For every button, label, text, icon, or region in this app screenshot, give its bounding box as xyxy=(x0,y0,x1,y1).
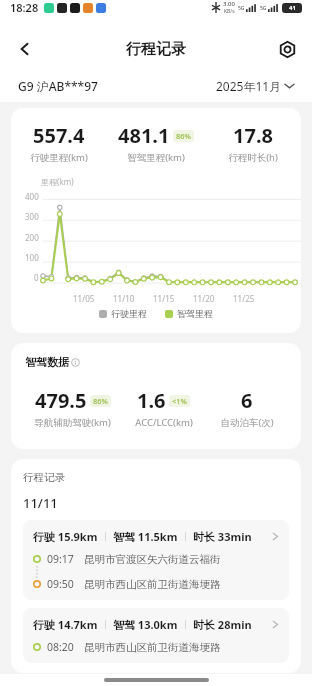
staticText: 时长 28min xyxy=(193,617,252,632)
staticText: 6 xyxy=(241,387,253,414)
staticText: 昆明市西山区前卫街道海埂路 xyxy=(84,641,221,654)
staticText: <1% xyxy=(172,396,187,406)
staticText: 481.1 xyxy=(118,122,170,149)
staticText: 导航辅助驾驶(km) xyxy=(34,416,111,429)
staticText: KB/s xyxy=(224,8,235,15)
staticText: 100 xyxy=(25,252,39,263)
staticText: 479.5 xyxy=(35,387,87,414)
staticText: 41 xyxy=(289,4,296,12)
button[interactable]: 行驶里程 xyxy=(99,308,147,319)
staticText: 557.4 xyxy=(33,122,85,149)
staticText: 2025年11月 xyxy=(216,78,282,94)
staticText: 行程记录 xyxy=(23,471,65,484)
staticText: 400 xyxy=(25,191,39,202)
button[interactable]: 智驾里程 xyxy=(165,308,213,319)
staticText: 智驾里程(km) xyxy=(127,151,185,164)
staticText: 智驾里程 xyxy=(177,308,213,319)
staticText: 行驶里程 xyxy=(111,308,147,319)
staticText: 09:50 xyxy=(47,577,74,591)
staticText: 11/15 xyxy=(153,293,175,304)
staticText: 1.6 xyxy=(137,387,166,414)
staticText: 里程(km) xyxy=(41,176,74,187)
button[interactable]: 行驶 15.9km xyxy=(23,520,289,600)
staticText: 11/20 xyxy=(193,293,215,304)
staticText: 11/25 xyxy=(233,293,255,304)
staticText: 3.00 xyxy=(223,0,235,8)
staticText: 5G xyxy=(238,5,245,12)
button[interactable]: 2025年11月 xyxy=(216,78,294,94)
staticText: 11/11 xyxy=(23,494,58,512)
staticText: 行驶 14.7km xyxy=(33,617,98,632)
staticText: 行程时长(h) xyxy=(228,151,278,164)
staticText: 智驾 13.0km xyxy=(113,617,178,632)
staticText: 0 xyxy=(34,272,39,283)
button[interactable]: Settings xyxy=(270,32,304,66)
staticText: 09:17 xyxy=(47,552,74,566)
staticText: 行驶里程(km) xyxy=(30,151,88,164)
staticText: 行驶 15.9km xyxy=(33,529,98,544)
staticText: ACC/LCC(km) xyxy=(135,416,193,429)
staticText: 时长 33min xyxy=(193,529,252,544)
staticText: 18:28 xyxy=(10,0,39,15)
button[interactable]: 智驾数据 xyxy=(25,355,80,369)
staticText: 86% xyxy=(93,396,108,406)
button[interactable]: Back xyxy=(8,32,42,66)
staticText: 200 xyxy=(25,232,39,243)
staticText: 300 xyxy=(25,211,39,222)
staticText: 昆明市官渡区矢六街道云福街 xyxy=(84,553,221,566)
button[interactable]: 行驶 14.7km xyxy=(23,608,289,663)
staticText: 11/10 xyxy=(113,293,135,304)
staticText: 智驾 11.5km xyxy=(113,529,178,544)
staticText: 08:20 xyxy=(47,640,74,654)
staticText: 智驾数据 xyxy=(25,355,69,369)
staticText: 17.8 xyxy=(233,122,273,149)
staticText: 11/05 xyxy=(73,293,95,304)
staticText: 行程记录 xyxy=(126,40,186,59)
staticText: 昆明市西山区前卫街道海埂路 xyxy=(84,578,221,591)
staticText: 86% xyxy=(176,131,191,141)
staticText: 自动泊车(次) xyxy=(220,416,274,429)
staticText: G9 沪AB***97 xyxy=(18,78,98,94)
staticText: 5G xyxy=(260,5,267,12)
